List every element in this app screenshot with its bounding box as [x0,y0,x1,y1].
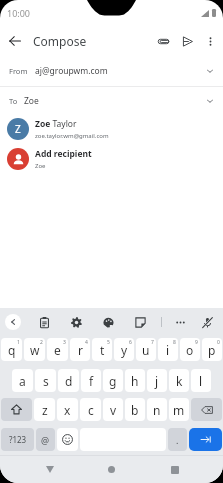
staticText: q [8,342,16,358]
button[interactable]: r [70,338,90,361]
button[interactable]: k [169,369,189,392]
staticText: 4 [85,339,88,346]
staticText: d [65,373,73,389]
button[interactable]: t [92,338,112,361]
staticText: 5 [107,339,110,346]
button[interactable]: g [103,369,123,392]
button[interactable]: Backspace [191,398,222,421]
staticText: 2 [40,339,43,346]
button[interactable]: a [12,369,33,392]
button[interactable]: s [35,369,56,392]
button[interactable]: Back [36,456,63,483]
staticText: 3 [63,339,66,346]
staticText: Zoe [24,95,39,107]
button[interactable]: Send [176,30,198,52]
button[interactable]: c [80,398,101,421]
staticText: @ [41,434,50,446]
staticText: To [9,96,18,106]
button[interactable]: j [147,369,167,392]
staticText: 1 [17,339,20,346]
staticText: f [89,373,94,389]
button[interactable]: At sign [36,428,55,451]
button[interactable]: p [202,338,222,361]
staticText: 7 [151,339,154,346]
button[interactable]: More [169,311,191,333]
button[interactable]: Home [98,456,125,483]
button[interactable]: Clipboard [33,311,55,333]
staticText: Z [15,122,21,136]
button[interactable]: Themes [97,311,119,333]
button[interactable]: Stickers [129,311,151,333]
button[interactable]: Collapse toolbar [5,314,21,330]
button[interactable]: Attach file [152,30,174,52]
button[interactable]: To [0,87,223,114]
button[interactable]: Period [168,428,187,451]
staticText: ?123 [9,434,27,445]
button[interactable]: d [58,369,79,392]
staticText: k [176,373,183,389]
staticText: n [153,402,161,418]
staticText: o [186,342,194,358]
button[interactable]: l [191,369,211,392]
button[interactable]: v [103,398,123,421]
button[interactable]: Enter [189,428,222,451]
staticText: Compose [33,33,87,49]
staticText: s [43,373,49,389]
staticText: 8 [173,339,176,346]
button[interactable]: o [180,338,200,361]
button[interactable]: Settings [65,311,87,333]
staticText: 10:00 [7,7,31,19]
button[interactable]: i [158,338,178,361]
staticText: m [173,402,185,418]
staticText: v [110,402,117,418]
button[interactable]: Add recipient [0,144,223,174]
staticText: g [109,373,117,389]
staticText: l [199,373,203,389]
staticText: 6 [129,339,132,346]
button[interactable]: h [125,369,145,392]
staticText: h [131,373,139,389]
button[interactable]: q [1,338,22,361]
staticText: Zoe Taylor [35,118,77,130]
button[interactable]: m [169,398,189,421]
staticText: Zoe [35,162,46,170]
button[interactable]: Symbols [1,428,34,451]
button[interactable]: Emoji [57,428,78,451]
button[interactable]: Back [3,29,27,53]
staticText: e [54,342,61,358]
button[interactable]: f [81,369,101,392]
button[interactable]: Recent apps [161,456,188,483]
staticText: a [19,373,26,389]
staticText: p [208,342,216,358]
staticText: b [131,402,139,418]
staticText: . [176,434,179,446]
button[interactable]: w [24,338,45,361]
button[interactable]: Voice input [196,311,218,333]
staticText: w [30,342,40,358]
staticText: y [121,342,128,358]
button[interactable]: n [147,398,167,421]
staticText: aj@groupwm.com [35,65,108,77]
button[interactable]: From [0,56,223,86]
button[interactable]: x [57,398,78,421]
staticText: i [166,342,170,358]
button[interactable]: u [136,338,156,361]
staticText: 9 [195,339,198,346]
button[interactable]: More options [198,29,222,53]
button[interactable]: z [34,398,55,421]
staticText: zoe.taylor.wm@gmail.com [35,132,109,140]
staticText: z [42,402,48,418]
staticText: j [155,373,159,389]
staticText: c [88,402,94,418]
staticText: t [100,342,105,358]
button[interactable]: Z [0,114,223,144]
staticText: Add recipient [35,148,92,160]
staticText: x [64,402,71,418]
button[interactable]: y [114,338,134,361]
button[interactable]: Shift [1,398,32,421]
button[interactable]: e [47,338,68,361]
button[interactable]: b [125,398,145,421]
staticText: u [142,342,150,358]
staticText: 0 [217,339,220,346]
